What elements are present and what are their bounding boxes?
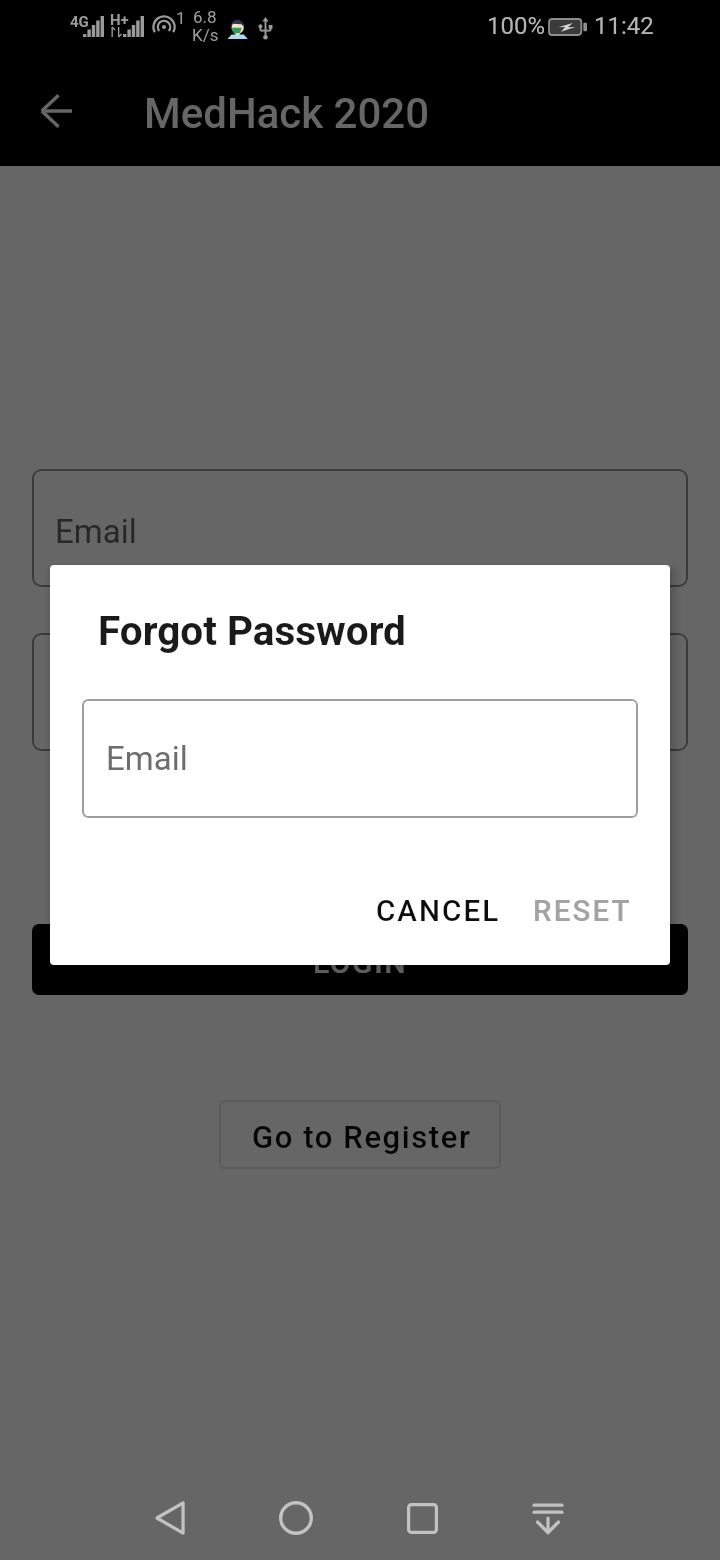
button[interactable]: LOGIN — [32, 924, 688, 995]
staticText: LOGIN — [313, 945, 408, 980]
button[interactable]: Navigate up — [26, 81, 86, 141]
button[interactable]: Back — [120, 1468, 220, 1560]
button[interactable] — [32, 633, 688, 751]
staticText: K/s — [192, 25, 219, 45]
staticText: 100% — [487, 12, 546, 40]
staticText: Email — [55, 512, 137, 551]
staticText: Forgot Password — [98, 607, 406, 654]
staticText: Go to Register — [252, 1119, 472, 1155]
button[interactable]: CANCEL — [360, 880, 517, 943]
staticText: MedHack 2020 — [144, 89, 430, 138]
button[interactable]: Recent apps — [372, 1468, 472, 1560]
staticText: 4G — [70, 13, 89, 31]
staticText: RESET — [533, 894, 632, 929]
staticText: 11:42 — [594, 12, 654, 40]
button[interactable]: Home — [246, 1468, 346, 1560]
staticText: Email — [106, 739, 188, 778]
staticText: 6.8 — [193, 7, 217, 27]
button[interactable]: RESET — [517, 880, 648, 943]
staticText: 1 — [176, 8, 186, 28]
staticText: CANCEL — [376, 894, 501, 929]
button[interactable]: Email — [82, 699, 638, 818]
staticText: H+ — [110, 11, 129, 29]
button[interactable]: Go to Register — [219, 1100, 501, 1169]
button[interactable]: Hide navigation bar — [498, 1468, 598, 1560]
button[interactable]: Email — [32, 469, 688, 587]
